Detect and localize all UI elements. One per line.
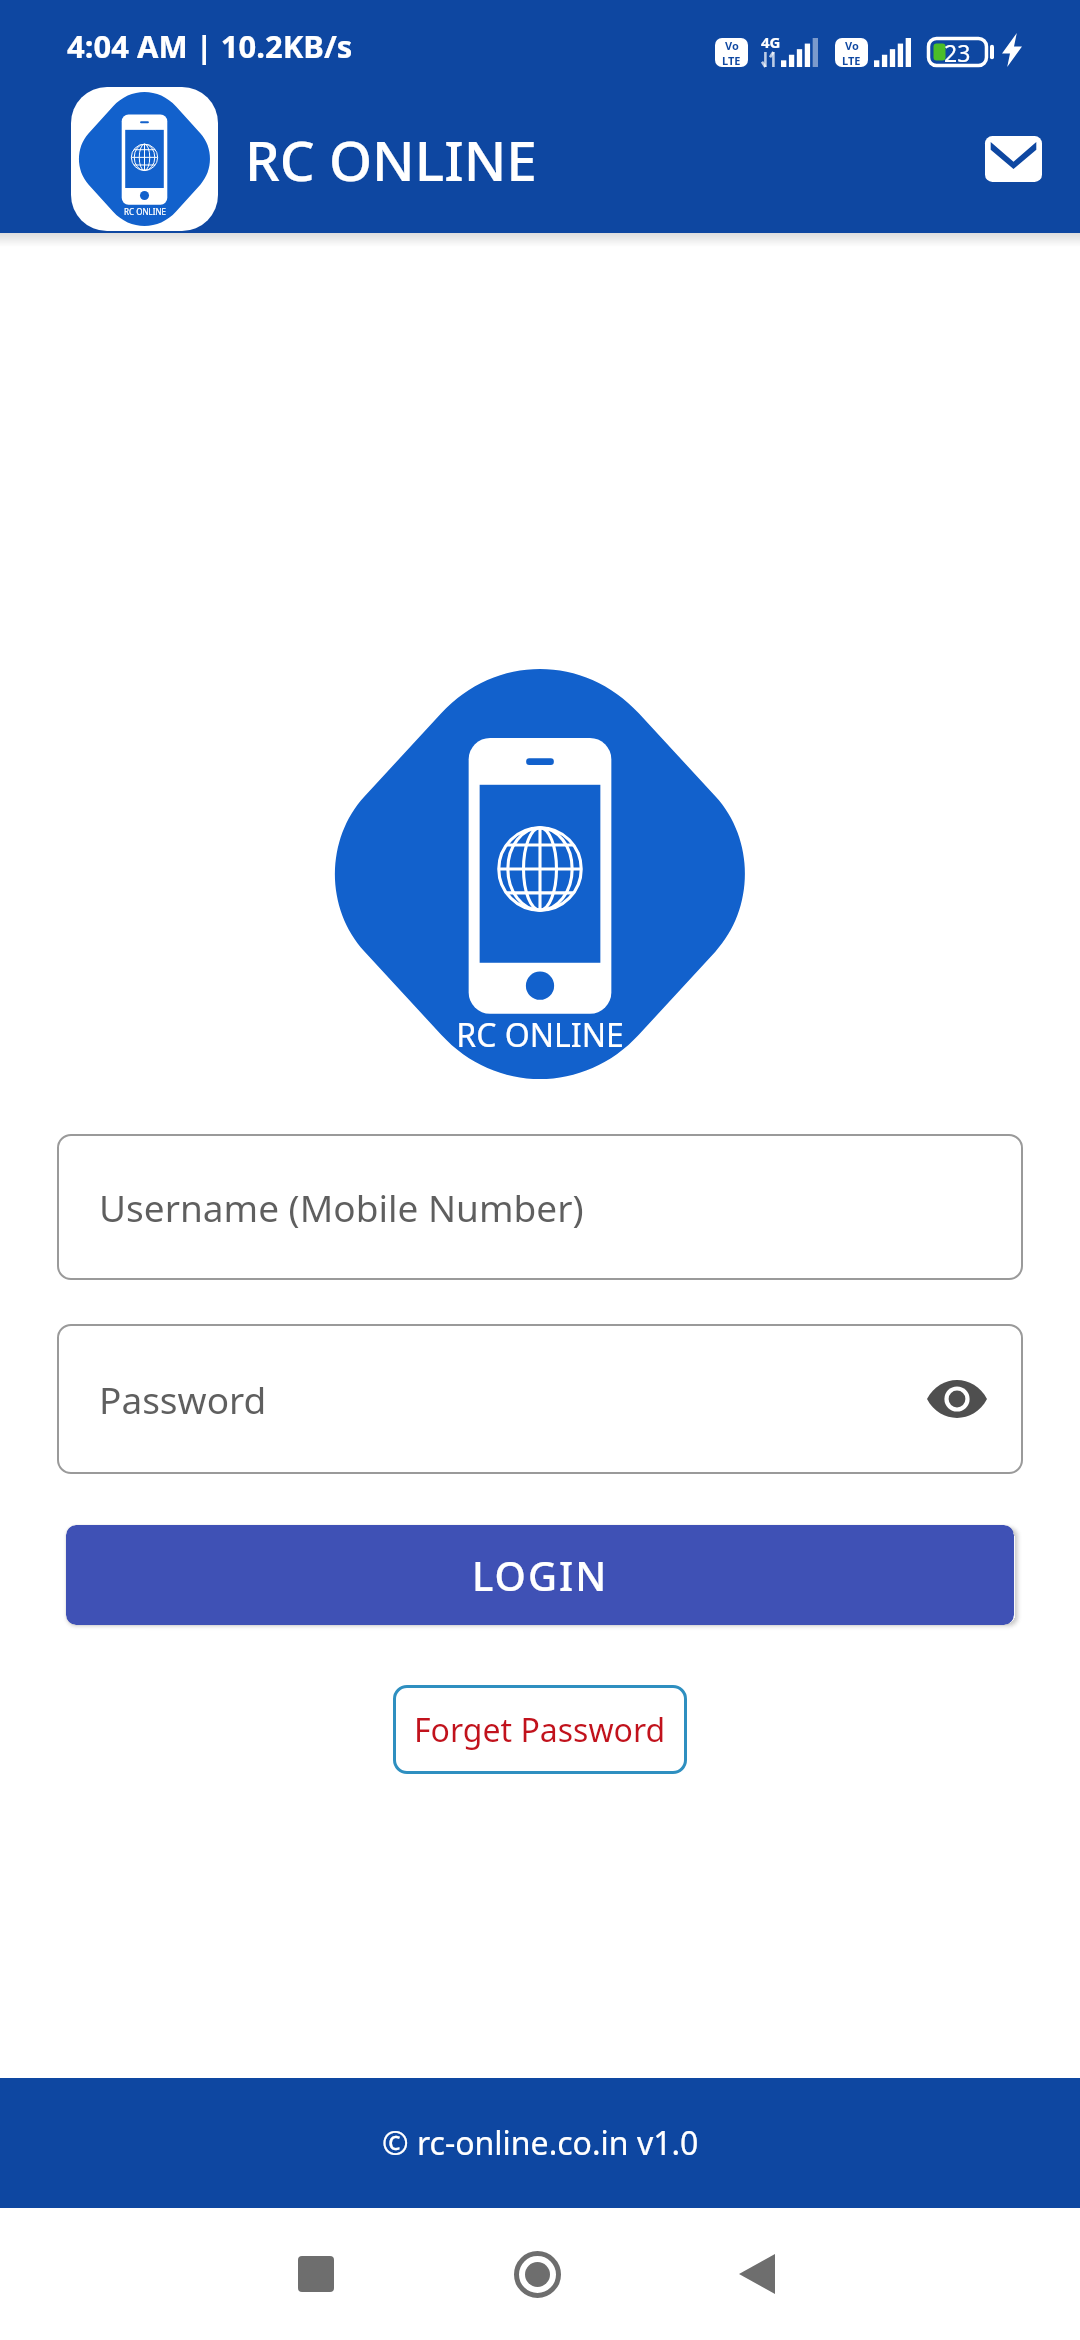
staticText: 23 xyxy=(944,37,971,67)
staticText: Vo xyxy=(725,38,739,53)
staticText: LTE xyxy=(722,53,741,67)
button[interactable]: Forget Password xyxy=(393,1685,687,1774)
staticText: RC ONLINE xyxy=(456,1013,624,1057)
staticText: RC ONLINE xyxy=(245,122,537,197)
staticText: LTE xyxy=(842,53,861,67)
staticText: LOGIN xyxy=(472,1548,609,1602)
staticText: RC ONLINE xyxy=(124,206,166,217)
button[interactable]: LOGIN xyxy=(66,1525,1014,1625)
button[interactable]: Messages xyxy=(970,116,1056,202)
staticText: Vo xyxy=(845,38,859,53)
staticText: Password xyxy=(99,1374,267,1424)
button[interactable]: Back xyxy=(702,2219,812,2329)
button[interactable]: Recent apps xyxy=(261,2219,371,2329)
staticText: Username (Mobile Number) xyxy=(99,1182,584,1232)
button[interactable]: Username (Mobile Number) xyxy=(57,1134,1023,1280)
staticText: © rc-online.co.in v1.0 xyxy=(382,2121,699,2165)
staticText: 4G xyxy=(761,32,781,52)
staticText: 4:04 AM | 10.2KB/s xyxy=(67,25,353,67)
button[interactable]: Show password xyxy=(915,1357,999,1441)
staticText: Forget Password xyxy=(414,1708,666,1752)
button[interactable]: Password xyxy=(57,1324,1023,1474)
button[interactable]: Home xyxy=(482,2219,592,2329)
